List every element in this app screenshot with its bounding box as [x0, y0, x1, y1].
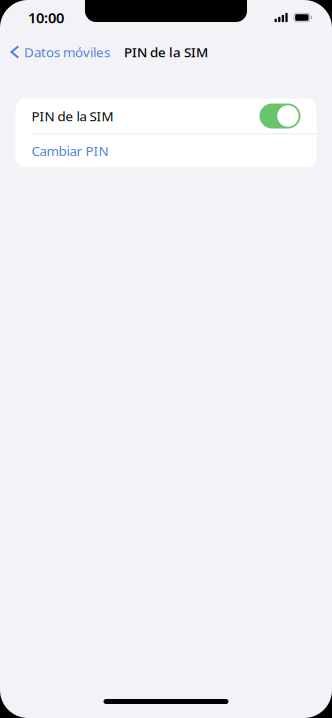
button[interactable]: Cambiar PIN [15, 134, 316, 167]
button[interactable]: Datos móviles [0, 38, 118, 66]
staticText: 10:00 [28, 8, 64, 27]
button[interactable]: PIN de la SIM [15, 98, 316, 133]
staticText: Cambiar PIN [31, 142, 108, 160]
staticText: Datos móviles [24, 43, 110, 61]
staticText: PIN de la SIM [124, 43, 208, 61]
staticText: PIN de la SIM [31, 107, 113, 125]
